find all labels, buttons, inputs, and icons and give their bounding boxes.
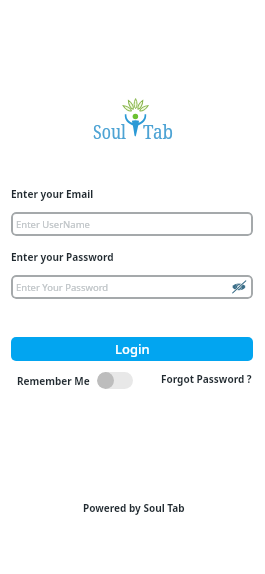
staticText: Enter your Email	[11, 187, 94, 201]
staticText: Tab	[143, 119, 174, 145]
button[interactable]: Forgot Password ?	[161, 372, 252, 386]
staticText: Login	[115, 340, 150, 358]
staticText: Remember Me	[17, 374, 90, 388]
button[interactable]: Login	[11, 337, 253, 361]
staticText: Powered by Soul Tab	[83, 501, 185, 515]
button[interactable]: Show password	[231, 279, 247, 295]
staticText: Enter UserName	[16, 218, 90, 231]
staticText: Enter Your Password	[16, 281, 109, 294]
staticText: Soul	[93, 119, 127, 145]
button[interactable]: Enter Your Password	[11, 275, 253, 299]
button[interactable]: Remember Me	[17, 372, 133, 389]
button[interactable]: Enter UserName	[11, 212, 253, 236]
staticText: Enter your Password	[11, 250, 114, 264]
